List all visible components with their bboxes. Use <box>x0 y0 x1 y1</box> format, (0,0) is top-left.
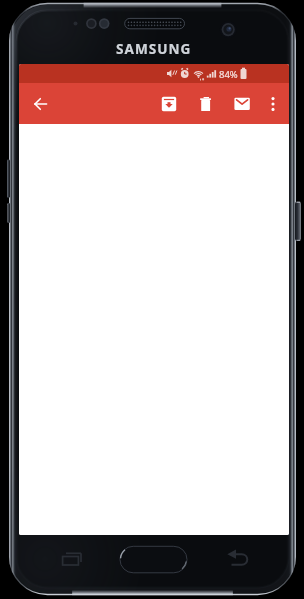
button[interactable]: Archive <box>153 88 185 120</box>
button[interactable]: Mark as unread <box>226 88 258 120</box>
button[interactable]: Navigate up <box>25 88 57 120</box>
button[interactable]: More options <box>257 88 289 120</box>
staticText: SAMSUNG <box>116 39 192 58</box>
staticText: 84% <box>219 68 238 81</box>
button[interactable]: Delete <box>190 88 222 120</box>
